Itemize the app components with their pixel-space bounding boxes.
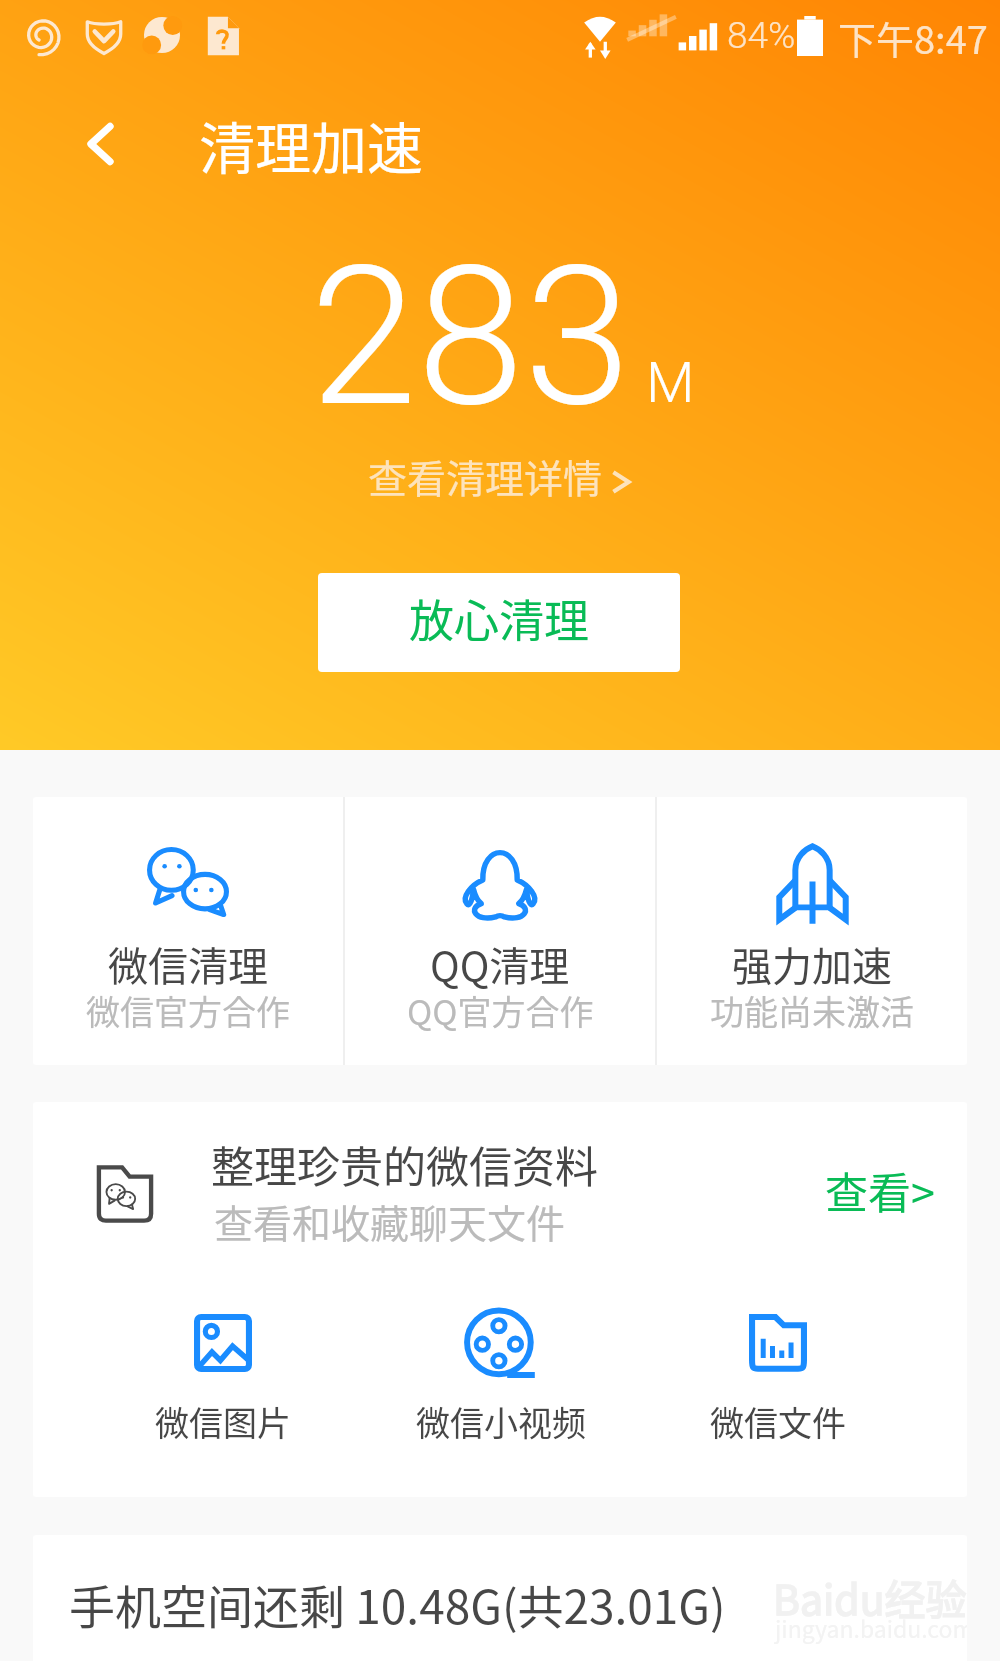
staticText: 微信官方合作 — [86, 986, 290, 1035]
staticText: 微信图片 — [155, 1397, 291, 1446]
staticText: 放心清理 — [409, 586, 590, 651]
button[interactable]: QQ清理 — [345, 797, 655, 1065]
staticText: M — [646, 350, 695, 416]
staticText: QQ官方合作 — [407, 986, 594, 1035]
button[interactable]: 强力加速 — [657, 797, 967, 1065]
button[interactable]: 微信文件 — [639, 1287, 916, 1497]
button[interactable]: 放心清理 — [318, 573, 680, 672]
staticText: QQ清理 — [430, 935, 570, 993]
staticText: 查看> — [825, 1159, 935, 1221]
staticText: 查看清理详情 — [368, 448, 603, 504]
staticText: 整理珍贵的微信资料 — [211, 1133, 598, 1195]
button[interactable]: 微信清理 — [33, 797, 343, 1065]
staticText: 微信小视频 — [416, 1397, 586, 1446]
button[interactable]: 微信小视频 — [362, 1287, 639, 1497]
staticText: 84% — [727, 14, 796, 57]
staticText: 微信文件 — [710, 1397, 846, 1446]
staticText: jingyan.baidu.com — [775, 1611, 967, 1644]
staticText: Baidu经验 — [773, 1567, 967, 1626]
button[interactable]: 整理珍贵的微信资料 — [33, 1102, 967, 1287]
staticText: 下午8:47 — [838, 10, 988, 65]
button[interactable]: 查看> — [811, 1148, 967, 1236]
button[interactable]: 手机空间还剩 10.48G(共23.01G) — [33, 1535, 967, 1661]
button[interactable]: 微信图片 — [84, 1287, 362, 1497]
staticText: 283 — [310, 224, 632, 450]
button[interactable]: Back — [45, 89, 155, 199]
button[interactable]: 查看清理详情 — [355, 443, 645, 505]
staticText: 微信清理 — [108, 935, 268, 993]
staticText: 手机空间还剩 10.48G(共23.01G) — [69, 1571, 726, 1638]
staticText: 查看和收藏聊天文件 — [214, 1193, 566, 1249]
staticText: 功能尚未激活 — [710, 986, 914, 1035]
staticText: 清理加速 — [199, 104, 423, 185]
staticText: 强力加速 — [732, 935, 892, 993]
